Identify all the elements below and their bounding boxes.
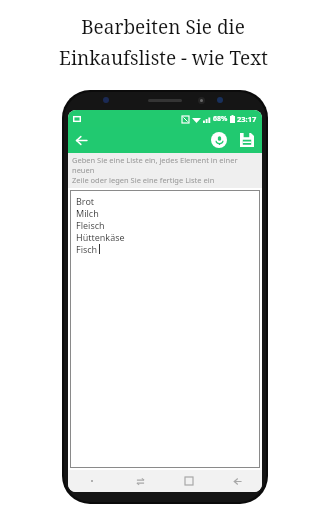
button[interactable]: Menu dot (68, 470, 116, 492)
staticText: 68% (213, 114, 228, 124)
staticText: Brot (76, 195, 95, 207)
button[interactable]: Recents (116, 470, 164, 492)
button[interactable]: Brot (70, 190, 260, 468)
button[interactable]: Back (213, 470, 262, 492)
staticText: Bearbeiten Sie die (81, 14, 245, 40)
staticText: 23:17 (237, 114, 257, 124)
staticText: Fisch (76, 243, 98, 255)
staticText: Einkaufsliste - wie Text (59, 45, 268, 71)
staticText: Milch (76, 207, 99, 219)
staticText: Fleisch (76, 219, 105, 231)
staticText: Geben Sie eine Liste ein, jedes Element … (72, 155, 258, 175)
button[interactable]: Back (68, 127, 94, 153)
button[interactable]: Voice input (206, 127, 232, 153)
staticText: Zeile oder legen Sie eine fertige Liste … (72, 175, 215, 185)
button[interactable]: Home (164, 470, 213, 492)
staticText: Hüttenkäse (76, 231, 125, 243)
button[interactable]: Save (234, 127, 260, 153)
